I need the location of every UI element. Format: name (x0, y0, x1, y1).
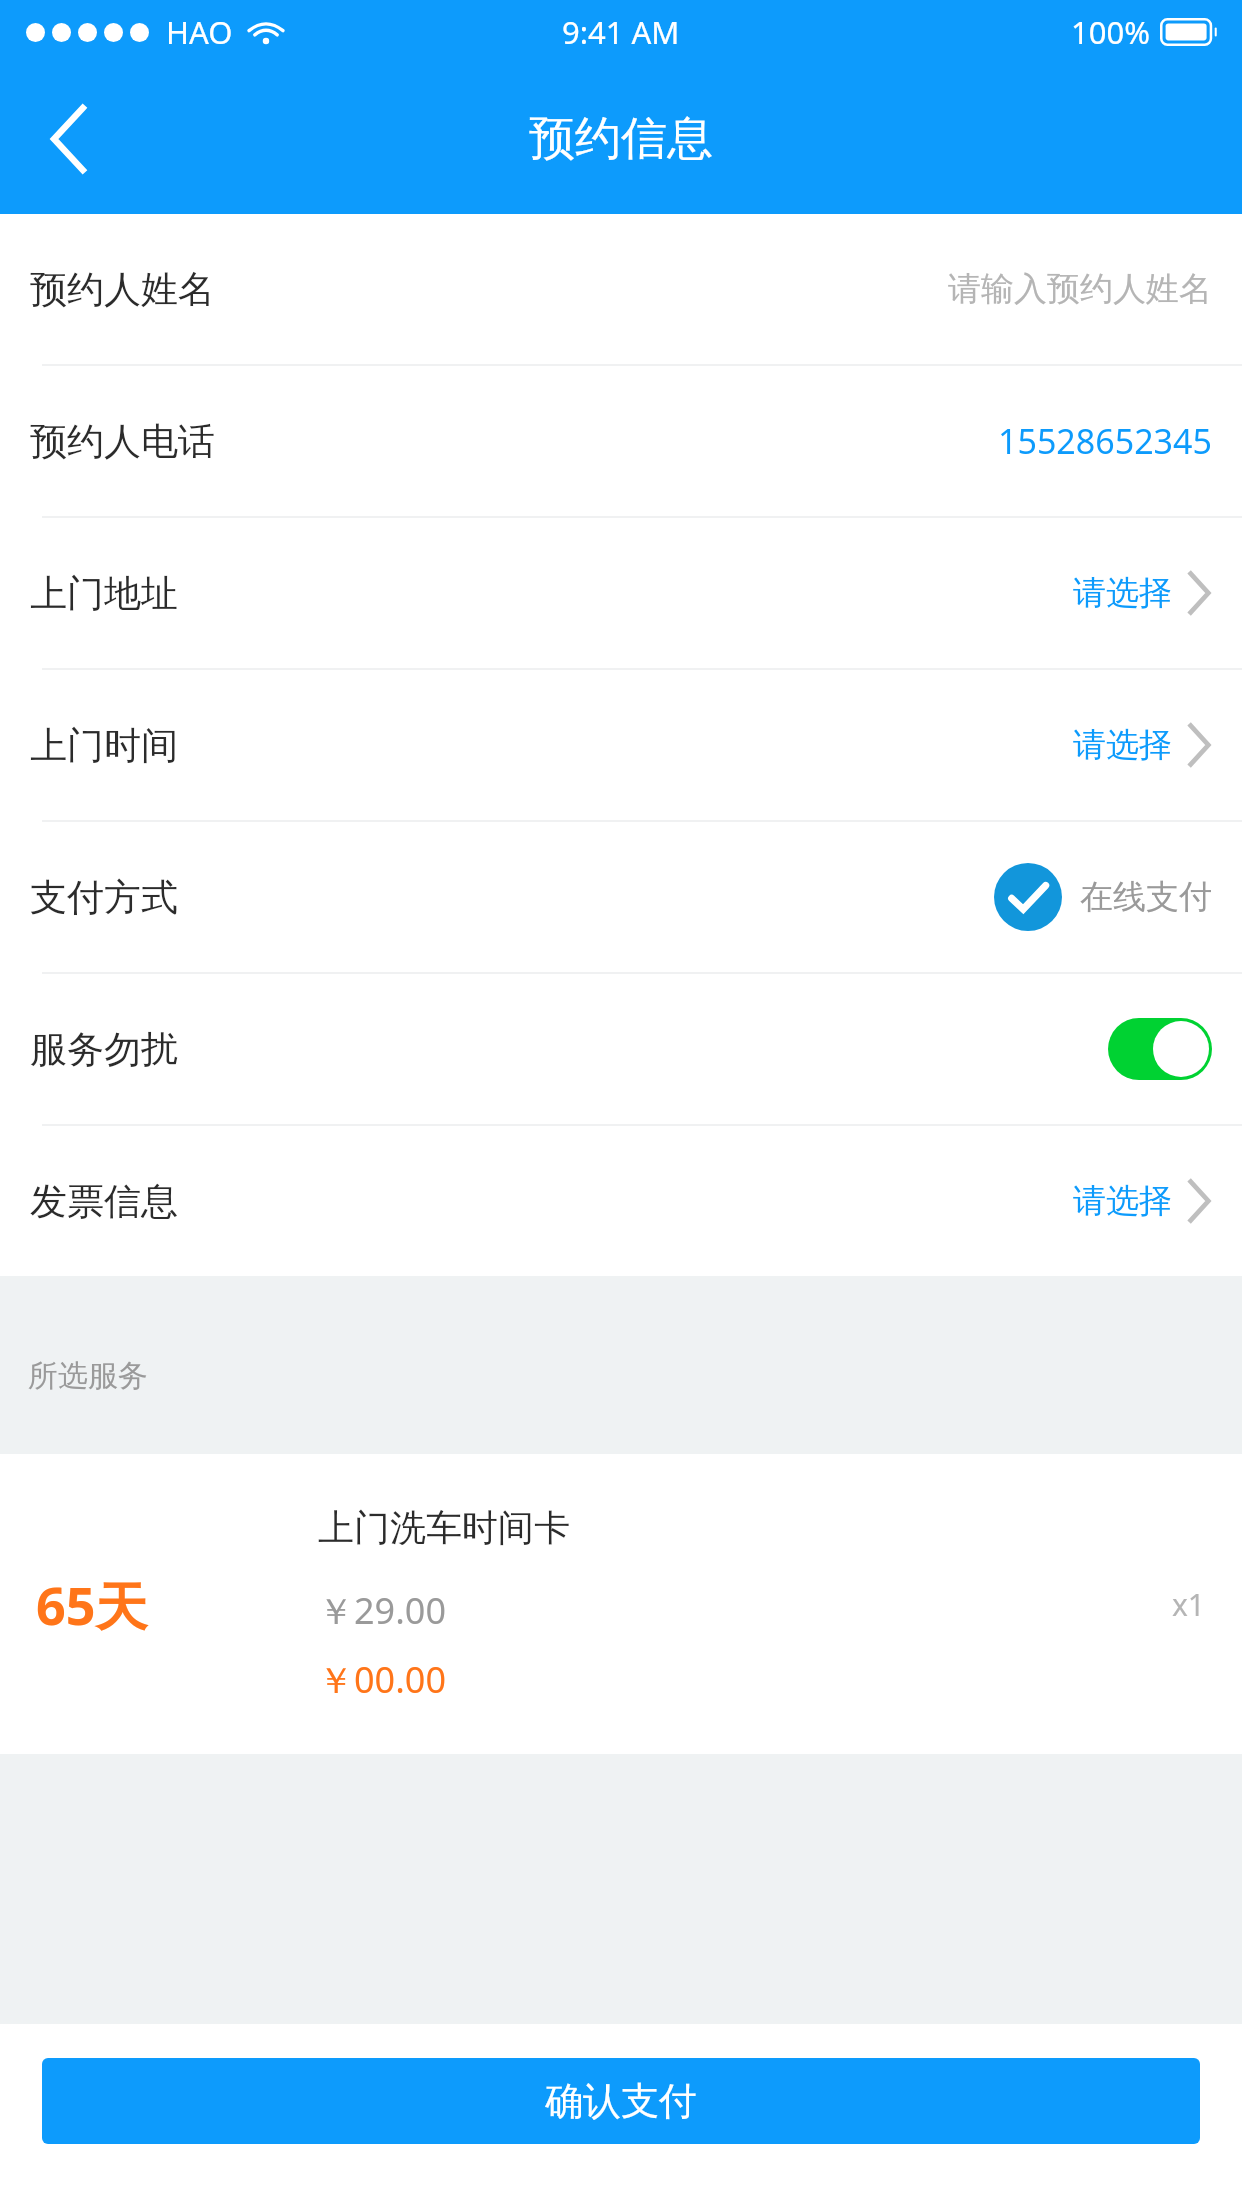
button[interactable]: 上门地址 (0, 518, 1242, 668)
staticText: ￥29.00 (318, 1586, 447, 1635)
staticText: 支付方式 (30, 874, 178, 921)
staticText: 上门洗车时间卡 (318, 1505, 570, 1550)
staticText: 服务勿扰 (30, 1026, 178, 1073)
staticText: 预约人姓名 (30, 266, 215, 313)
button[interactable]: 上门时间 (0, 670, 1242, 820)
button[interactable]: 预约人电话 (0, 366, 1242, 516)
staticText: 所选服务 (28, 1357, 148, 1395)
staticText: 请选择 (1073, 1180, 1172, 1222)
staticText: 上门地址 (30, 570, 178, 617)
staticText: 发票信息 (30, 1178, 178, 1225)
staticText: 15528652345 (998, 418, 1212, 464)
staticText: 65天 (36, 1569, 148, 1640)
staticText: 请选择 (1073, 572, 1172, 614)
staticText: 100% (1071, 11, 1150, 53)
staticText: HAO (166, 11, 233, 53)
button[interactable]: Back (18, 87, 122, 191)
staticText: 请输入预约人姓名 (948, 268, 1212, 310)
staticText: ￥00.00 (318, 1655, 447, 1704)
staticText: 在线支付 (1080, 876, 1212, 918)
button[interactable]: 发票信息 (0, 1126, 1242, 1276)
staticText: 请选择 (1073, 724, 1172, 766)
staticText: x1 (1172, 1584, 1206, 1625)
staticText: 预约人电话 (30, 418, 215, 465)
button[interactable]: 预约人姓名 (0, 214, 1242, 364)
button[interactable]: 服务勿扰 (0, 974, 1242, 1124)
button[interactable]: 支付方式 (0, 822, 1242, 972)
button[interactable]: 确认支付 (42, 2058, 1200, 2144)
staticText: 上门时间 (30, 722, 178, 769)
staticText: 确认支付 (545, 2077, 697, 2125)
staticText: 9:41 AM (562, 11, 680, 53)
button[interactable]: 在线支付已选择 (994, 863, 1062, 931)
button[interactable]: 服务勿扰开关 (1108, 1018, 1212, 1080)
staticText: 预约信息 (529, 110, 713, 168)
